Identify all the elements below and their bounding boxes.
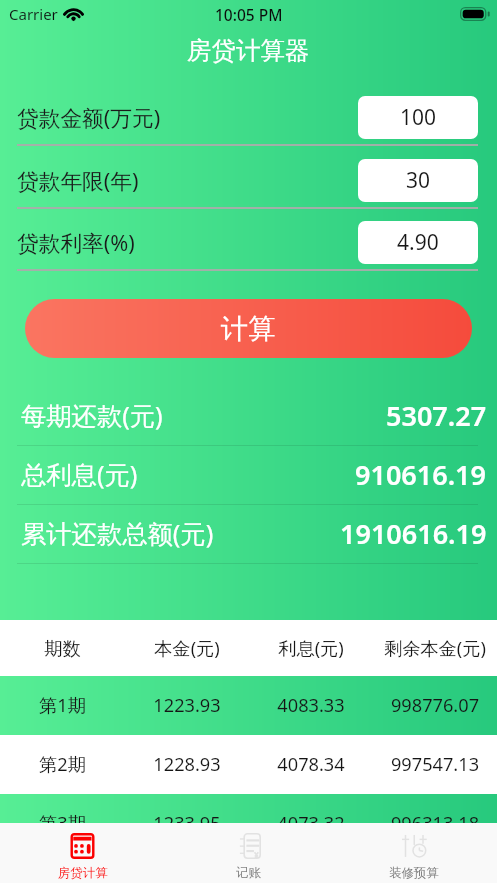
button[interactable]: 第2期 xyxy=(0,735,497,794)
staticText: 996313.18 xyxy=(373,811,497,836)
staticText: 30 xyxy=(406,166,431,195)
staticText: 总利息(元) xyxy=(21,457,138,492)
staticText: 每期还款(元) xyxy=(21,398,163,433)
button[interactable]: 100 xyxy=(358,96,478,139)
staticText: 记账 xyxy=(236,865,261,881)
staticText: 期数 xyxy=(0,637,125,660)
staticText: 第1期 xyxy=(0,693,125,718)
staticText: 997547.13 xyxy=(373,752,497,777)
staticText: 1910616.19 xyxy=(340,515,487,552)
staticText: 计算 xyxy=(221,312,276,346)
button[interactable]: 期数 xyxy=(0,620,497,676)
staticText: Carrier xyxy=(9,4,58,24)
staticText: 第3期 xyxy=(0,811,125,836)
button[interactable]: 第1期 xyxy=(0,676,497,735)
staticText: 998776.07 xyxy=(373,693,497,718)
staticText: 1223.93 xyxy=(125,693,249,718)
staticText: 1233.95 xyxy=(125,811,249,836)
button[interactable]: 记账 xyxy=(165,823,331,883)
staticText: 装修预算 xyxy=(389,865,439,881)
staticText: 本金(元) xyxy=(125,636,249,661)
staticText: 1228.93 xyxy=(125,752,249,777)
staticText: 累计还款总额(元) xyxy=(21,516,214,551)
staticText: 5307.27 xyxy=(386,397,487,434)
button[interactable]: 装修预算 xyxy=(331,823,497,883)
staticText: 4083.33 xyxy=(249,693,373,718)
button[interactable]: 房贷计算 xyxy=(0,823,165,883)
staticText: 4.90 xyxy=(397,228,439,257)
staticText: 贷款利率(%) xyxy=(17,228,135,258)
staticText: 4078.34 xyxy=(249,752,373,777)
staticText: 利息(元) xyxy=(249,636,373,661)
button[interactable]: 30 xyxy=(358,159,478,202)
button[interactable]: 计算 xyxy=(25,299,472,358)
staticText: 贷款年限(年) xyxy=(17,166,139,196)
button[interactable]: 4.90 xyxy=(358,221,478,264)
staticText: 4073.32 xyxy=(249,811,373,836)
staticText: 剩余本金(元) xyxy=(373,636,497,661)
staticText: 100 xyxy=(400,103,437,132)
staticText: 房贷计算器 xyxy=(187,35,310,66)
staticText: 贷款金额(万元) xyxy=(17,103,161,133)
staticText: 房贷计算 xyxy=(58,865,108,881)
staticText: 第2期 xyxy=(0,752,125,777)
staticText: 910616.19 xyxy=(355,456,487,493)
staticText: 10:05 PM xyxy=(215,4,283,25)
button[interactable]: 第3期 xyxy=(0,794,497,853)
